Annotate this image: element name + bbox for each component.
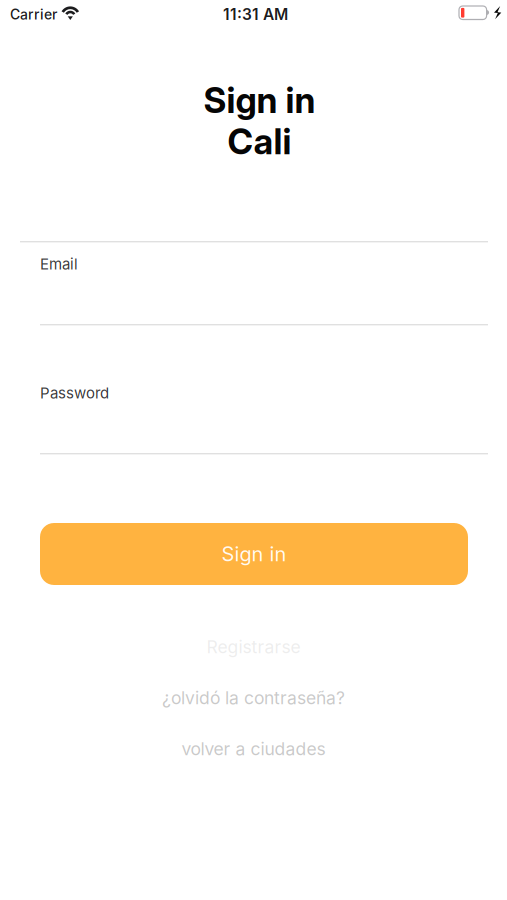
staticText: Sign in xyxy=(203,79,315,121)
staticText: ¿olvidó la contraseña? xyxy=(162,687,345,709)
staticText: Sign in xyxy=(221,542,286,566)
staticText: 11:31 AM xyxy=(223,5,288,24)
staticText: Carrier xyxy=(10,6,57,23)
button[interactable]: Sign in xyxy=(40,523,468,585)
button[interactable]: ¿olvidó la contraseña? xyxy=(0,685,507,711)
button[interactable]: volver a ciudades xyxy=(0,736,507,762)
staticText: Email xyxy=(40,255,78,273)
staticText: Cali xyxy=(227,120,291,163)
staticText: Registrarse xyxy=(206,636,300,658)
staticText: Password xyxy=(40,384,109,402)
staticText: volver a ciudades xyxy=(181,738,325,760)
